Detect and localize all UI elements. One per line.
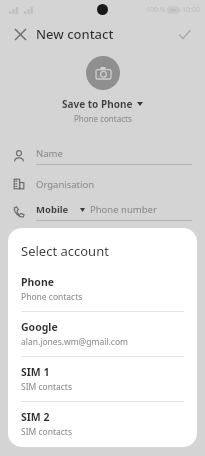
- staticText: SIM contacts: [21, 426, 73, 438]
- staticText: 10:00: [182, 5, 200, 15]
- staticText: alan.jones.wm@gmail.com: [21, 336, 129, 348]
- button[interactable]: SIM 1: [8, 365, 197, 410]
- staticText: Organisation: [36, 178, 95, 191]
- button[interactable]: Phone: [8, 275, 197, 320]
- button[interactable]: Google: [8, 320, 197, 365]
- button[interactable]: Close: [10, 24, 30, 44]
- staticText: Phone contacts: [74, 113, 132, 124]
- staticText: SIM 2: [21, 410, 50, 424]
- staticText: SIM 1: [21, 365, 50, 379]
- staticText: SIM contacts: [21, 381, 73, 393]
- staticText: Name: [36, 147, 63, 160]
- staticText: Phone number: [90, 203, 157, 216]
- button[interactable]: Save to Phone: [62, 97, 143, 111]
- button[interactable]: Home: [0, 226, 205, 254]
- staticText: 100 %: [146, 5, 166, 15]
- staticText: Google: [21, 320, 58, 334]
- staticText: Mobile: [36, 203, 69, 216]
- button[interactable]: Add photo: [86, 56, 120, 90]
- button[interactable]: SIM 2: [8, 410, 197, 446]
- staticText: Select account: [21, 242, 109, 260]
- button[interactable]: Name: [0, 142, 205, 170]
- button[interactable]: Mobile: [0, 198, 205, 226]
- staticText: Save to Phone: [62, 97, 133, 111]
- button[interactable]: Organisation: [0, 170, 205, 198]
- button[interactable]: Save: [173, 23, 195, 45]
- staticText: New contact: [36, 25, 114, 43]
- staticText: Phone contacts: [21, 291, 83, 303]
- staticText: Phone: [21, 275, 55, 289]
